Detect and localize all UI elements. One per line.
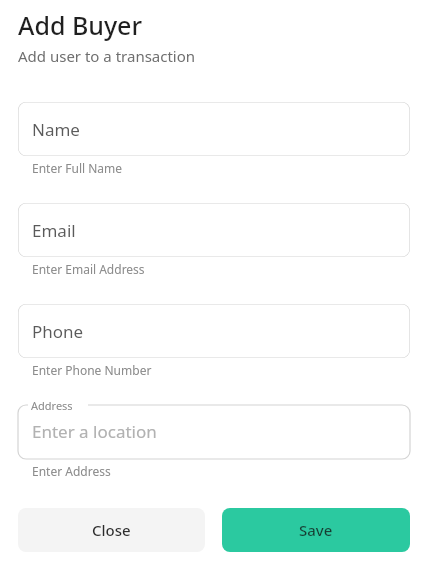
button[interactable] (18, 405, 410, 459)
staticText: Save (299, 520, 333, 540)
button[interactable]: Phone (18, 304, 410, 358)
button[interactable]: Save (222, 508, 410, 552)
button[interactable]: Email (18, 203, 410, 257)
staticText: Name (32, 118, 80, 141)
staticText: Email (32, 219, 76, 242)
staticText: Enter Email Address (32, 261, 145, 277)
staticText: Add user to a transaction (18, 46, 196, 66)
button[interactable]: Name (18, 102, 410, 156)
staticText: Close (92, 520, 131, 540)
staticText: Phone (32, 320, 84, 343)
button[interactable]: Close (18, 508, 205, 552)
staticText: Enter a location (32, 420, 157, 443)
staticText: Add Buyer (18, 8, 143, 42)
staticText: Enter Address (32, 463, 111, 479)
staticText: Address (31, 398, 73, 413)
staticText: Enter Full Name (32, 160, 123, 176)
staticText: Enter Phone Number (32, 362, 152, 378)
